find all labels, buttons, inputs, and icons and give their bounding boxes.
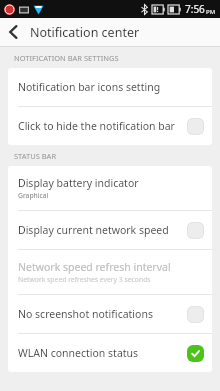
staticText: Notification center [30,24,140,41]
staticText: WLAN connection status [18,346,139,360]
staticText: NOTIFICATION BAR SETTINGS [14,53,119,63]
staticText: Graphical [18,191,49,200]
staticText: Display current network speed [18,223,169,237]
staticText: Network speed refresh interval [18,260,171,274]
button: Network speed refresh interval [8,250,212,294]
staticText: Click to hide the notification bar [18,119,175,133]
button[interactable]: Display current network speed [8,211,212,249]
staticText: Display battery indicator [18,176,139,190]
button[interactable]: Notification bar icons setting [8,68,212,106]
button[interactable]: Display battery indicator [8,166,212,210]
button[interactable]: WLAN connection status [8,334,212,372]
staticText: Network speed refreshes every 3 seconds [18,275,151,284]
button[interactable]: Click to hide the notification bar [8,107,212,145]
staticText: 7:56 [185,2,205,16]
button[interactable]: On [187,345,204,362]
staticText: Notification bar icons setting [18,80,161,94]
button[interactable]: Off [187,118,204,135]
button[interactable]: Back [0,18,26,46]
button[interactable]: No screenshot notifications [8,295,212,333]
staticText: No screenshot notifications [18,307,153,321]
button[interactable]: Off [187,306,204,323]
staticText: PM [206,8,216,16]
button[interactable]: Off [187,222,204,239]
staticText: STATUS BAR [14,151,57,161]
